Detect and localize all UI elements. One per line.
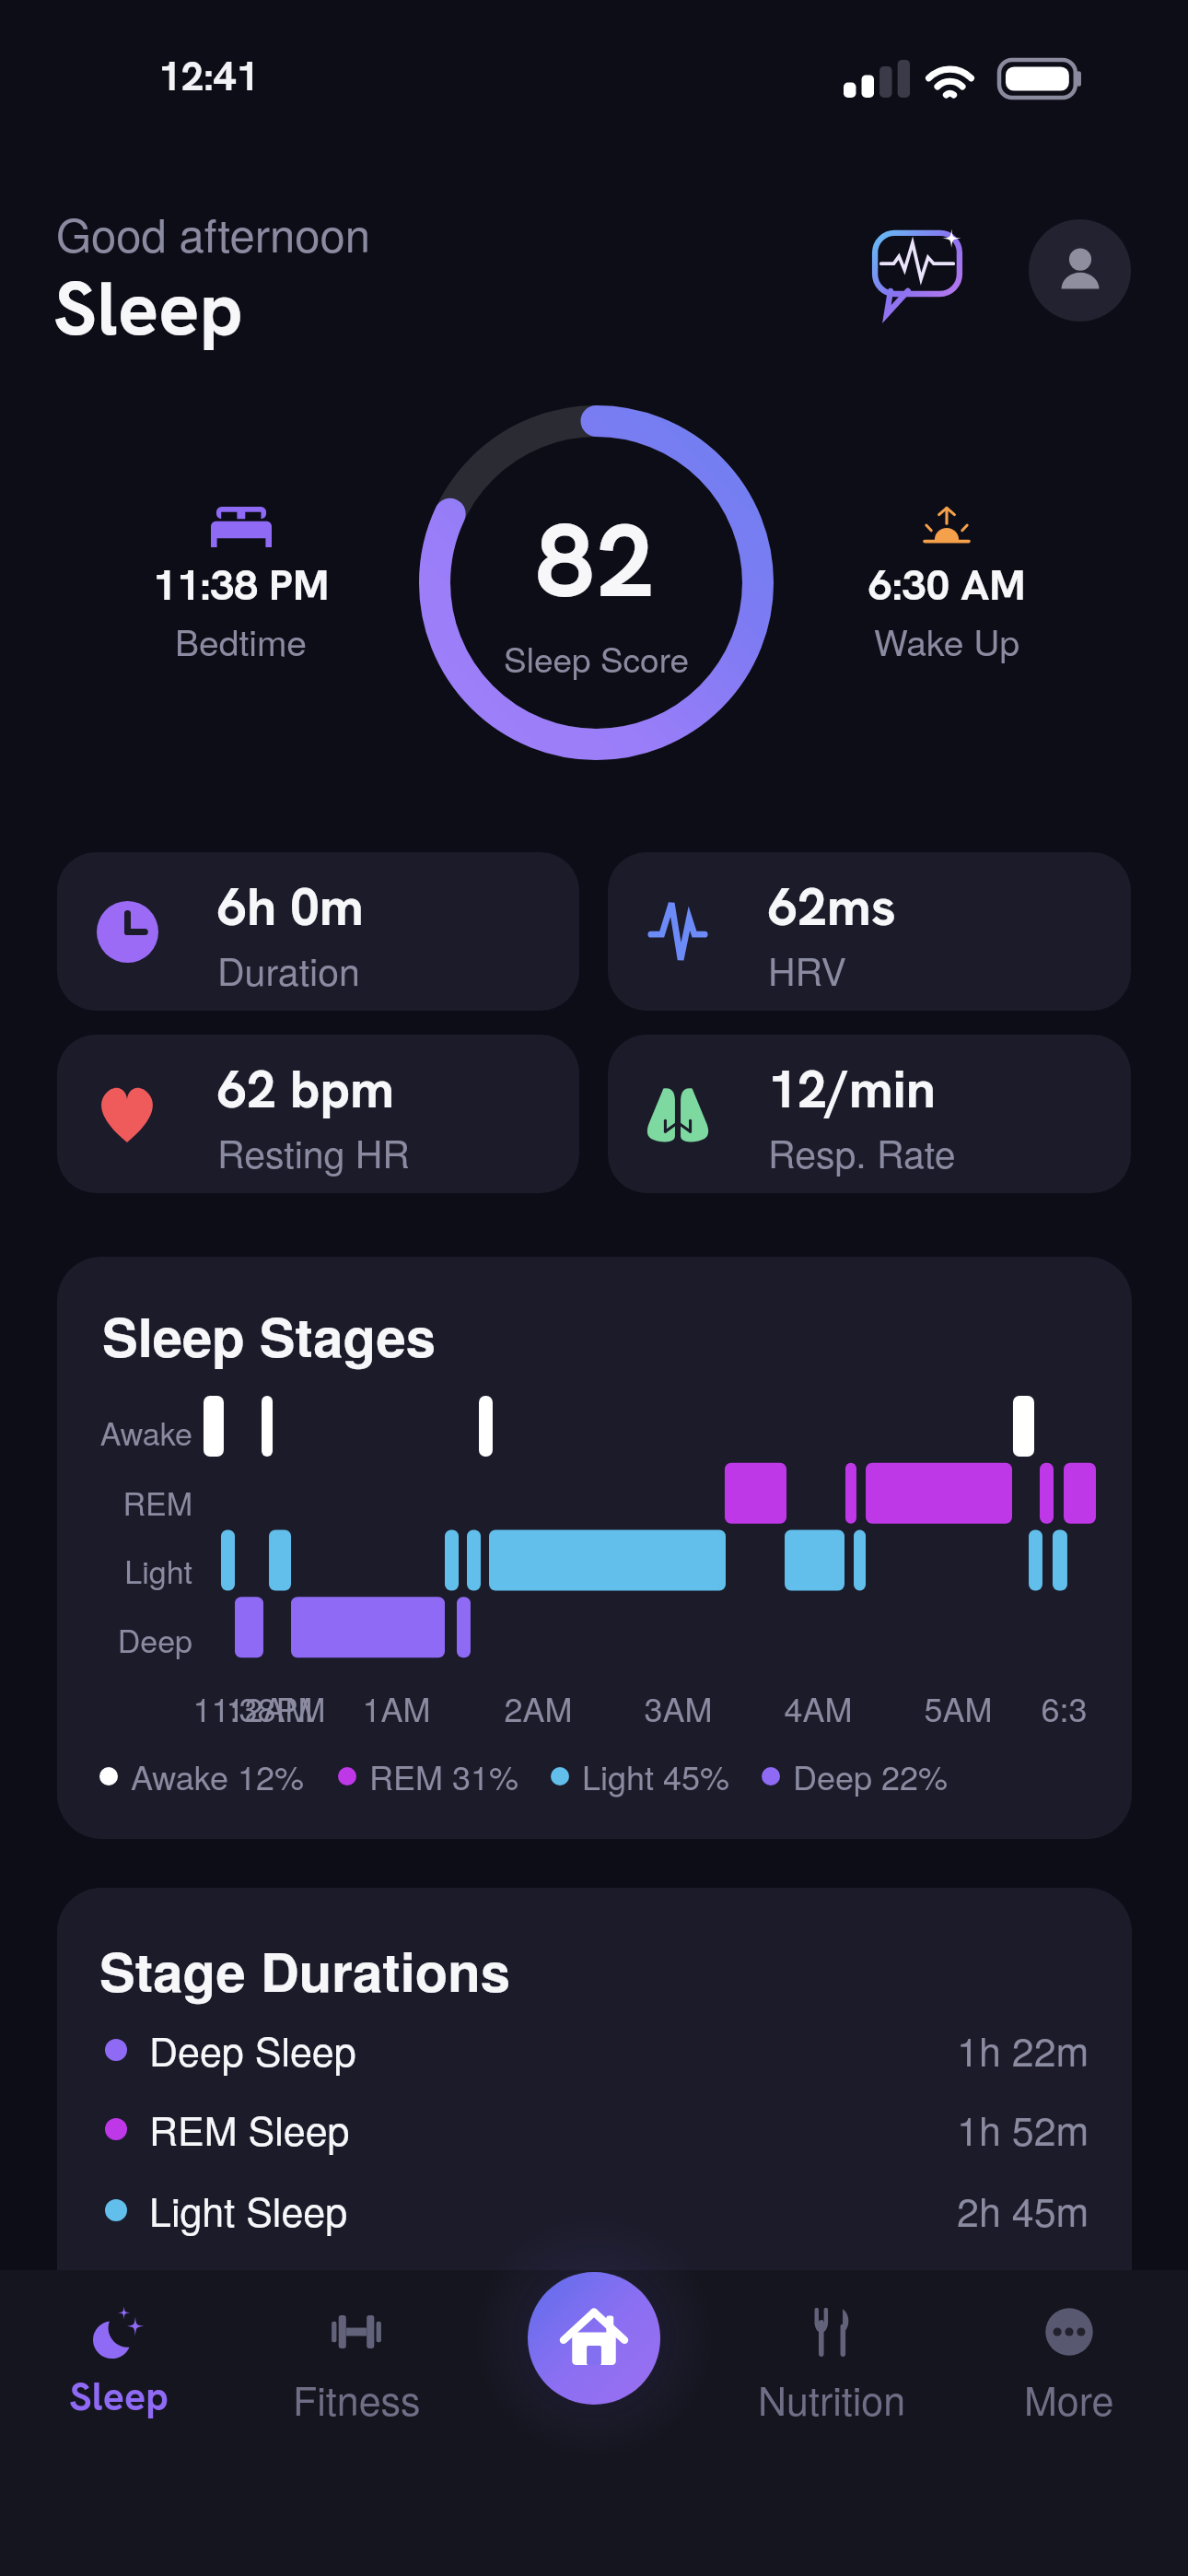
button[interactable]: Fitness	[238, 2270, 475, 2576]
staticText: Wake Up	[874, 615, 1020, 666]
staticText: Sleep	[53, 259, 243, 357]
button[interactable]: 12/min	[608, 1035, 1131, 1193]
staticText: 6:30AM	[1041, 1684, 1089, 1732]
button[interactable]: Sleep	[0, 2270, 238, 2576]
staticText: 12AM	[226, 1684, 313, 1732]
button[interactable]: 62 bpm	[57, 1035, 579, 1193]
staticText: Resp. Rate	[768, 1125, 956, 1179]
staticText: REM	[122, 1480, 192, 1525]
staticText: 82	[536, 493, 658, 627]
staticText: 11:38 PM	[153, 557, 330, 613]
staticText: Fitness	[293, 2371, 421, 2428]
staticText: 3AM	[644, 1684, 713, 1732]
staticText: Awake	[99, 1410, 192, 1455]
button[interactable]: Nutrition	[713, 2270, 950, 2576]
staticText: 0h 44m	[957, 2263, 1089, 2320]
staticText: 6h 0m	[217, 872, 364, 941]
staticText: Deep	[117, 1617, 192, 1662]
button[interactable]: Sleep Stages	[57, 1257, 1132, 1839]
staticText: Bedtime	[175, 615, 308, 666]
staticText: 62 bpm	[217, 1055, 395, 1123]
button[interactable]: Stage Durations	[57, 1888, 1132, 2404]
staticText: REM 31%	[369, 1752, 519, 1800]
staticText: 4AM	[784, 1684, 853, 1732]
staticText: 11:38PM	[192, 1684, 326, 1732]
button[interactable]: 6h 0m	[57, 852, 579, 1011]
button[interactable]: Home	[528, 2272, 660, 2405]
button[interactable]: Profile	[1029, 219, 1131, 322]
staticText: Light 45%	[582, 1752, 730, 1800]
staticText: Deep 22%	[793, 1752, 949, 1800]
staticText: 62ms	[768, 872, 896, 941]
staticText: 5AM	[924, 1684, 993, 1732]
staticText: HRV	[768, 943, 846, 997]
button[interactable]: More	[950, 2270, 1188, 2576]
staticText: 2h 45m	[957, 2182, 1089, 2239]
staticText: REM Sleep	[149, 2101, 957, 2158]
staticText: Deep Sleep	[149, 2021, 957, 2078]
staticText: Sleep Stages	[102, 1297, 436, 1374]
staticText: Duration	[217, 943, 360, 997]
button[interactable]: 62ms	[608, 852, 1131, 1011]
staticText: 1h 22m	[957, 2021, 1089, 2078]
staticText: 12/min	[768, 1055, 936, 1123]
staticText: 1h 52m	[957, 2101, 1089, 2158]
staticText: Awake	[149, 2263, 957, 2320]
staticText: Resting HR	[217, 1125, 410, 1179]
staticText: 6:30 AM	[868, 557, 1026, 613]
staticText: Nutrition	[758, 2371, 906, 2428]
staticText: Sleep Score	[504, 634, 690, 683]
staticText: Good afternoon	[56, 201, 370, 265]
staticText: Light Sleep	[149, 2182, 957, 2239]
staticText: 12:41	[158, 50, 260, 102]
staticText: 2AM	[504, 1684, 573, 1732]
staticText: Light	[124, 1548, 192, 1593]
button[interactable]: AI insights	[869, 226, 965, 318]
staticText: 1AM	[362, 1684, 431, 1732]
staticText: More	[1024, 2371, 1114, 2428]
staticText: Stage Durations	[99, 1932, 510, 2008]
staticText: Sleep	[69, 2371, 169, 2422]
staticText: Awake 12%	[131, 1752, 305, 1800]
